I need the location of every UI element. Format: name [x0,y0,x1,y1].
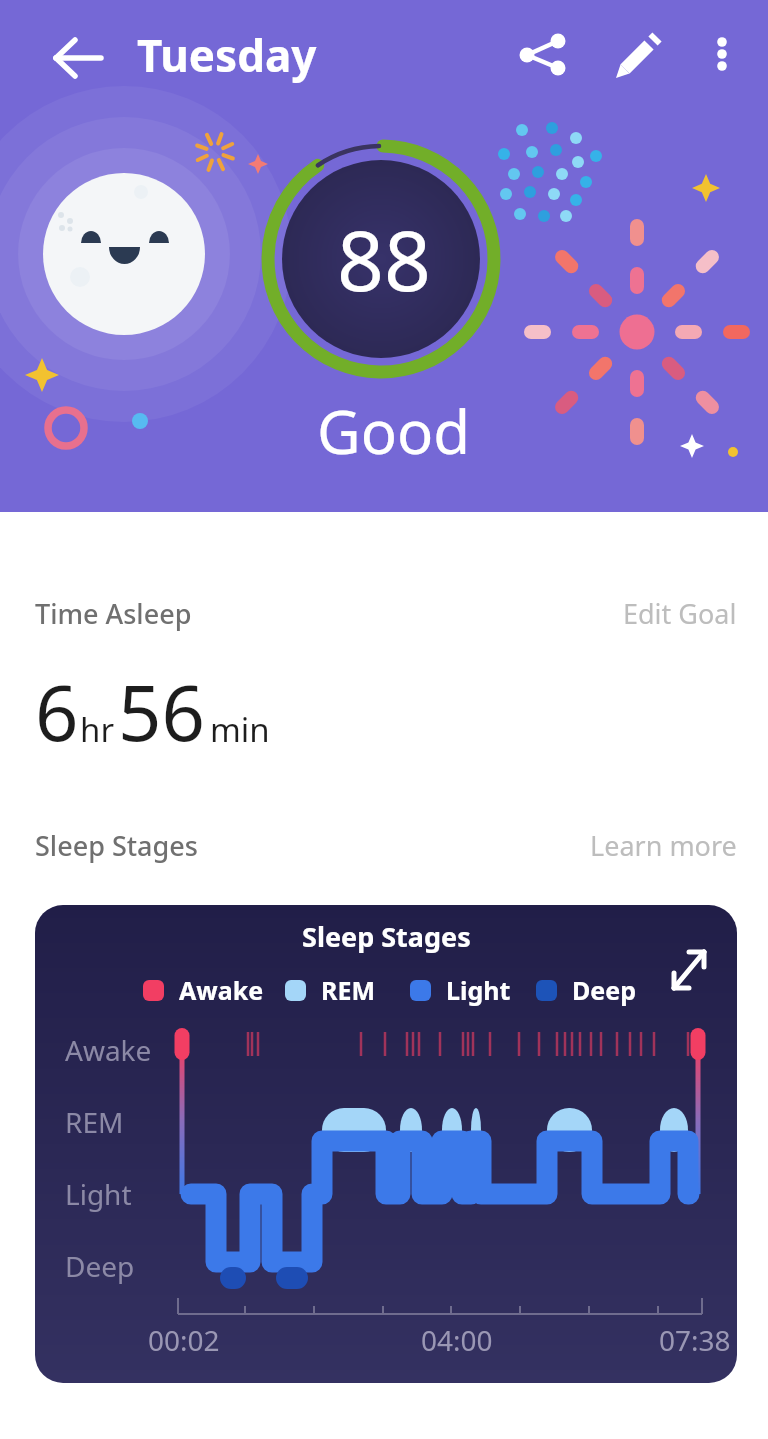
button[interactable]: Awake [143,973,264,1007]
button[interactable]: Light [410,973,511,1007]
staticText: 6 [35,660,79,764]
button[interactable] [516,26,572,82]
staticText: min [210,707,270,752]
button[interactable]: Learn more [590,827,737,864]
staticText: Sleep Stages [35,827,198,864]
button[interactable] [30,30,86,86]
button[interactable]: REM [285,973,375,1007]
staticText: 88 [337,203,431,315]
staticText: 04:00 [421,1321,493,1359]
staticText: Awake [65,1031,152,1069]
staticText: Deep [65,1247,135,1285]
button[interactable] [659,933,719,993]
staticText: Tuesday [137,25,317,85]
staticText: 07:38 [659,1321,731,1359]
button[interactable] [610,26,666,82]
staticText: REM [65,1103,124,1141]
staticText: Sleep Stages [302,918,471,955]
button[interactable] [694,26,750,82]
button[interactable]: Sleep Stages [35,905,737,1383]
staticText: hr [80,707,115,752]
staticText: Light [65,1175,132,1213]
staticText: Deep [572,973,636,1007]
button[interactable]: Edit Goal [623,595,737,632]
staticText: Good [317,390,471,472]
button[interactable]: Deep [536,973,636,1007]
staticText: Time Asleep [35,595,192,632]
staticText: 00:02 [148,1321,220,1359]
staticText: Light [446,973,511,1007]
staticText: Awake [179,973,264,1007]
staticText: REM [321,973,375,1007]
staticText: 56 [118,660,205,764]
